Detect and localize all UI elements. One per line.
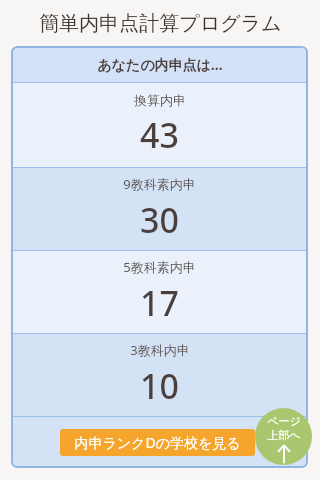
staticText: 3教科内申 xyxy=(130,341,190,359)
staticText: 17 xyxy=(140,280,179,326)
button[interactable]: 内申ランクDの学校を見る xyxy=(60,429,255,456)
button[interactable]: 3教科内申 xyxy=(11,333,308,416)
staticText: 9教科素内申 xyxy=(123,175,196,193)
staticText: 5教科素内申 xyxy=(123,258,196,276)
staticText: 上部へ xyxy=(267,428,301,442)
button[interactable]: 換算内申 xyxy=(11,82,308,167)
button[interactable]: 9教科素内申 xyxy=(11,167,308,250)
staticText: 10 xyxy=(140,363,179,409)
staticText: 内申ランクDの学校を見る xyxy=(74,433,241,452)
staticText: 30 xyxy=(140,197,179,243)
staticText: あなたの内申点は… xyxy=(97,55,223,74)
staticText: 簡単内申点計算プログラム xyxy=(39,11,282,36)
staticText: 43 xyxy=(140,112,179,158)
button[interactable]: ページ上部へ xyxy=(255,408,312,465)
staticText: 換算内申 xyxy=(134,92,186,108)
staticText: ページ xyxy=(267,414,301,428)
button[interactable]: 5教科素内申 xyxy=(11,250,308,333)
